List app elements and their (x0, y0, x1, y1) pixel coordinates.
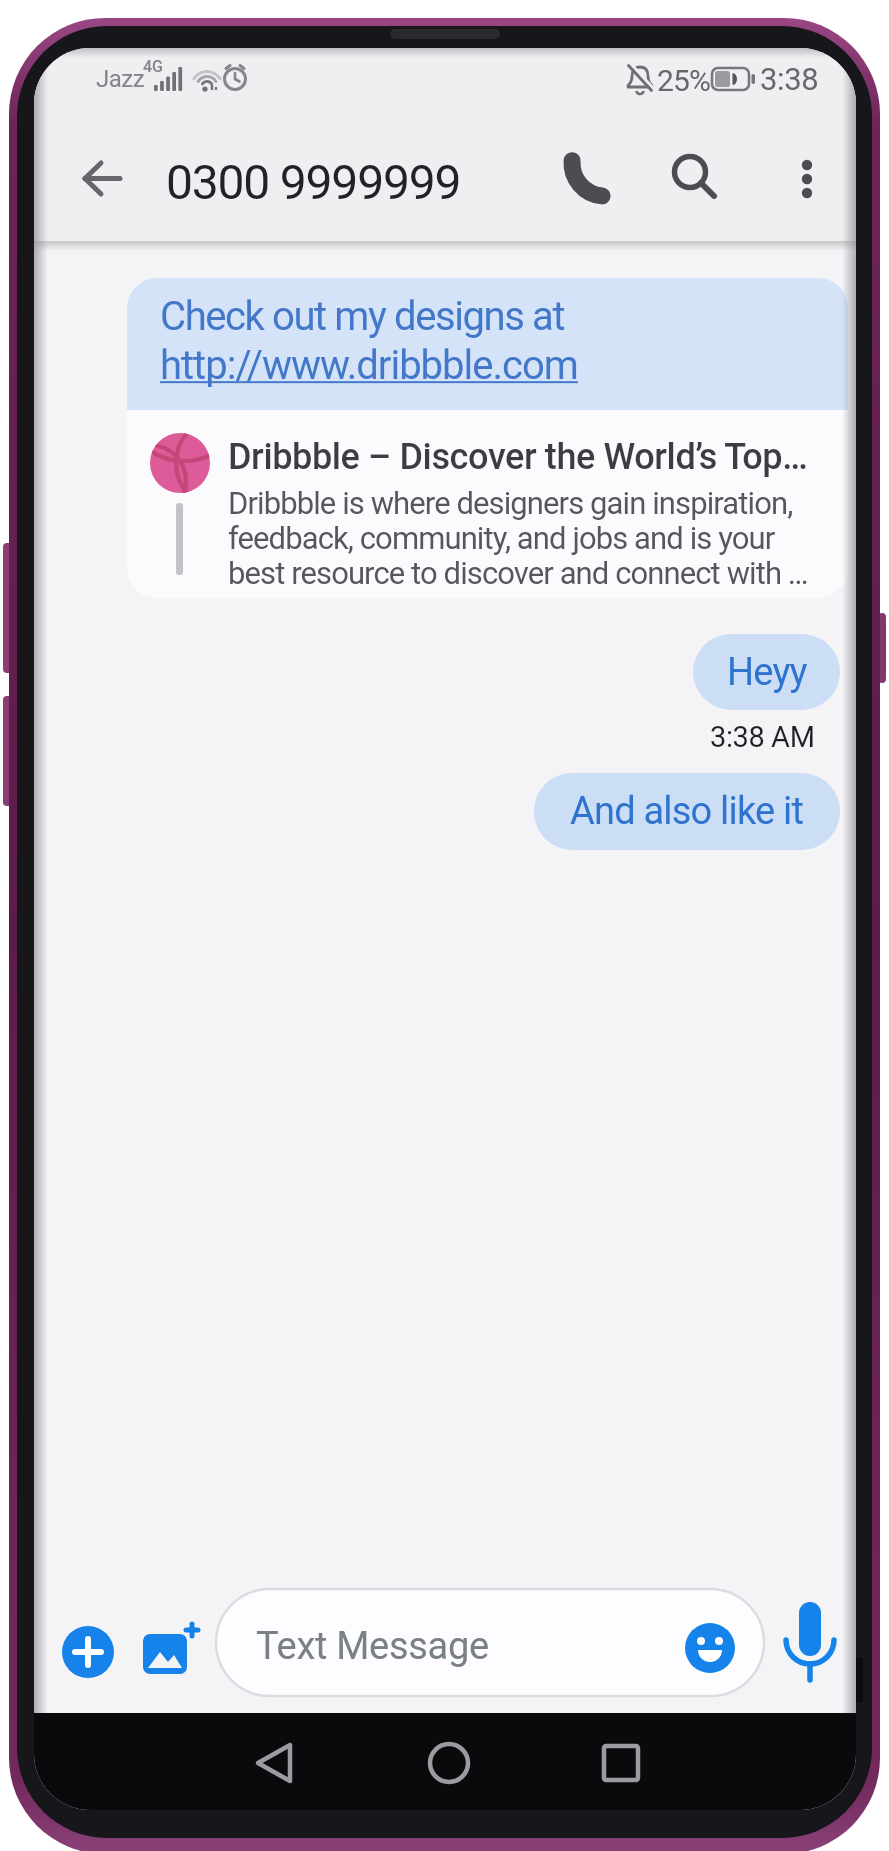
button[interactable] (242, 1730, 308, 1796)
staticText: Text Message (256, 1624, 489, 1669)
staticText: And also like it (570, 789, 804, 834)
button[interactable] (558, 152, 614, 208)
button[interactable] (215, 1588, 765, 1697)
button[interactable] (588, 1730, 654, 1796)
staticText: 4G (143, 57, 163, 76)
button[interactable]: http://www.dribbble.com (160, 342, 578, 389)
button[interactable] (62, 1626, 114, 1678)
staticText: Heyy (727, 650, 807, 695)
button[interactable] (664, 146, 724, 206)
button[interactable] (416, 1730, 482, 1796)
button[interactable] (140, 1622, 200, 1682)
staticText: 25% (657, 63, 711, 98)
staticText: 3:38 (760, 61, 819, 97)
button[interactable] (790, 146, 826, 212)
button[interactable] (72, 150, 132, 208)
staticText: Check out my designs at (160, 293, 565, 340)
button[interactable] (127, 410, 848, 598)
staticText: Dribbble is where designers gain inspira… (228, 485, 808, 591)
staticText: 3:38 AM (710, 720, 815, 754)
staticText: 0300 9999999 (166, 154, 461, 210)
button[interactable] (782, 1596, 838, 1688)
staticText: Dribbble – Discover the World’s Top… (228, 436, 808, 478)
button[interactable] (685, 1623, 735, 1673)
staticText: Jazz (96, 65, 145, 93)
